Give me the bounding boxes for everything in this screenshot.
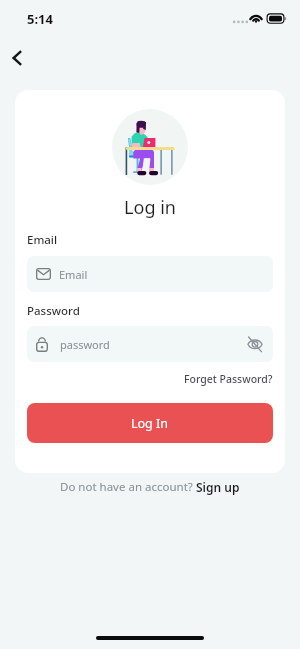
button[interactable]: password [27, 326, 273, 362]
button[interactable]: Email [27, 256, 273, 292]
button[interactable]: Back [0, 41, 34, 75]
button[interactable]: Forget Password? [184, 372, 273, 386]
staticText: Log In [131, 415, 169, 432]
staticText: Email [27, 232, 58, 248]
button[interactable]: Show password [245, 334, 265, 354]
staticText: Email [59, 267, 88, 282]
staticText: Do not have an account? [60, 479, 196, 495]
button[interactable]: Log In [27, 403, 273, 443]
staticText: 5:14 [27, 10, 53, 28]
staticText: password [60, 337, 110, 352]
button[interactable]: Sign up [196, 479, 240, 495]
staticText: Password [27, 303, 80, 319]
staticText: Log in [27, 195, 273, 220]
